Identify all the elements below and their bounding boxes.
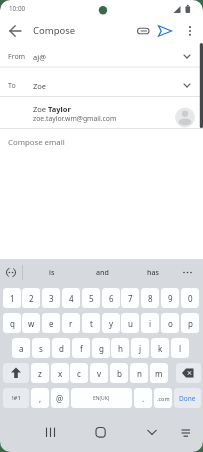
button[interactable]: f: [72, 338, 90, 358]
button[interactable]: m: [150, 363, 168, 383]
button[interactable]: 6: [102, 288, 120, 308]
staticText: y: [109, 318, 114, 329]
button[interactable]: [88, 420, 113, 445]
button[interactable]: ,: [31, 388, 49, 408]
button[interactable]: 7: [121, 288, 139, 308]
button[interactable]: n: [130, 363, 148, 383]
button[interactable]: 3: [42, 288, 60, 308]
button[interactable]: l: [171, 338, 189, 358]
button[interactable]: r: [62, 313, 80, 333]
staticText: a: [19, 343, 24, 354]
button[interactable]: @: [51, 388, 69, 408]
button[interactable]: 8: [141, 288, 159, 308]
button[interactable]: e: [42, 313, 60, 333]
button[interactable]: a: [12, 338, 30, 358]
button[interactable]: [135, 23, 152, 39]
staticText: @: [56, 393, 64, 404]
staticText: q: [10, 318, 15, 329]
staticText: is: [49, 268, 55, 278]
button[interactable]: g: [92, 338, 110, 358]
button[interactable]: [157, 23, 174, 39]
button[interactable]: x: [51, 363, 69, 383]
button[interactable]: [0, 44, 203, 67]
button[interactable]: .: [134, 388, 152, 408]
button[interactable]: p: [181, 313, 199, 333]
staticText: p: [188, 318, 193, 329]
button[interactable]: has: [129, 260, 177, 285]
button[interactable]: 9: [161, 288, 179, 308]
staticText: EN(UK): [93, 395, 110, 402]
staticText: d: [59, 343, 64, 354]
button[interactable]: 1: [3, 288, 21, 308]
button[interactable]: [183, 23, 197, 39]
staticText: 9: [168, 293, 173, 304]
staticText: h: [118, 343, 123, 354]
staticText: n: [137, 368, 142, 379]
staticText: g: [99, 343, 104, 354]
staticText: Zoe Taylor: [33, 104, 71, 114]
button[interactable]: 2: [22, 288, 40, 308]
button[interactable]: [176, 363, 201, 383]
button[interactable]: w: [22, 313, 40, 333]
staticText: ,: [39, 393, 42, 404]
button[interactable]: .com: [154, 388, 172, 408]
button[interactable]: [6, 22, 24, 40]
staticText: Done: [179, 394, 196, 403]
staticText: z: [38, 368, 42, 379]
staticText: To: [8, 81, 16, 91]
button[interactable]: u: [121, 313, 139, 333]
button[interactable]: s: [32, 338, 50, 358]
button[interactable]: i: [141, 313, 159, 333]
button[interactable]: 5: [82, 288, 100, 308]
staticText: and: [96, 268, 109, 278]
button[interactable]: [38, 420, 63, 445]
button[interactable]: k: [151, 338, 169, 358]
staticText: l: [179, 343, 182, 354]
button[interactable]: q: [3, 313, 21, 333]
staticText: aj@: [33, 52, 46, 62]
button[interactable]: j: [131, 338, 149, 358]
button[interactable]: [0, 97, 203, 128]
button[interactable]: [0, 68, 203, 96]
staticText: 1: [10, 293, 15, 304]
staticText: x: [58, 368, 63, 379]
button[interactable]: [140, 420, 165, 445]
button[interactable]: v: [90, 363, 108, 383]
staticText: has: [147, 268, 159, 278]
staticText: b: [117, 368, 122, 379]
button[interactable]: [176, 420, 198, 445]
button[interactable]: [0, 129, 203, 155]
button[interactable]: z: [31, 363, 49, 383]
staticText: t: [90, 318, 93, 329]
staticText: 5: [89, 293, 94, 304]
button[interactable]: EN(UK): [71, 388, 132, 408]
staticText: s: [39, 343, 43, 354]
staticText: !#1: [12, 394, 21, 402]
staticText: 8: [148, 293, 153, 304]
staticText: m: [155, 368, 163, 379]
button[interactable]: 0: [181, 288, 199, 308]
staticText: 3: [49, 293, 54, 304]
button[interactable]: and: [78, 260, 126, 285]
button[interactable]: 4: [62, 288, 80, 308]
staticText: 10:00: [9, 4, 26, 13]
staticText: r: [69, 318, 73, 329]
button[interactable]: Done: [174, 388, 201, 408]
button[interactable]: y: [102, 313, 120, 333]
staticText: w: [28, 318, 35, 329]
button[interactable]: h: [111, 338, 129, 358]
button[interactable]: is: [28, 260, 76, 285]
button[interactable]: d: [52, 338, 70, 358]
button[interactable]: c: [70, 363, 88, 383]
button[interactable]: t: [82, 313, 100, 333]
button[interactable]: !#1: [3, 388, 29, 408]
staticText: o: [168, 318, 173, 329]
button[interactable]: o: [161, 313, 179, 333]
staticText: Compose: [33, 24, 76, 37]
staticText: Zoe: [33, 81, 47, 91]
staticText: Compose email: [8, 137, 65, 148]
button[interactable]: [3, 363, 29, 383]
staticText: 6: [109, 293, 114, 304]
staticText: c: [77, 368, 81, 379]
button[interactable]: b: [110, 363, 128, 383]
